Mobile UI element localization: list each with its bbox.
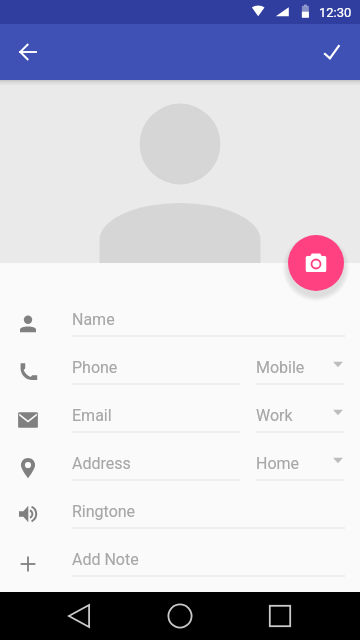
staticText: Add Note [72, 550, 139, 569]
staticText: Home [256, 454, 300, 473]
button[interactable]: Back [4, 28, 52, 76]
button[interactable]: Ringtone [16, 502, 40, 526]
button[interactable]: Save contact [308, 28, 356, 76]
button[interactable]: Add Note [16, 552, 40, 576]
button[interactable]: Home [256, 450, 344, 481]
button[interactable]: Email [16, 408, 40, 432]
button[interactable]: Add Note [72, 546, 345, 577]
button[interactable]: Ringtone [72, 498, 345, 529]
button[interactable]: Phone [72, 354, 240, 385]
button[interactable]: Change photo [288, 235, 344, 291]
staticText: Ringtone [72, 502, 136, 521]
staticText: Mobile [256, 358, 305, 377]
staticText: Name [72, 310, 115, 329]
staticText: 12:30 [319, 5, 352, 20]
button[interactable]: Mobile [256, 354, 344, 385]
button[interactable]: Address [72, 450, 240, 481]
button[interactable]: Recent apps [256, 592, 304, 640]
button[interactable]: Email [72, 402, 240, 433]
button[interactable]: Work [256, 402, 344, 433]
button[interactable]: Back [55, 592, 103, 640]
staticText: Phone [72, 358, 118, 377]
button[interactable]: Name [72, 306, 345, 337]
button[interactable]: Name [16, 312, 40, 336]
button[interactable]: Phone [16, 360, 40, 384]
button[interactable]: Address [16, 456, 40, 480]
staticText: Email [72, 406, 112, 425]
staticText: Address [72, 454, 131, 473]
staticText: Work [256, 406, 293, 425]
button[interactable]: Home [156, 592, 204, 640]
button[interactable]: Contact photo [0, 80, 360, 263]
